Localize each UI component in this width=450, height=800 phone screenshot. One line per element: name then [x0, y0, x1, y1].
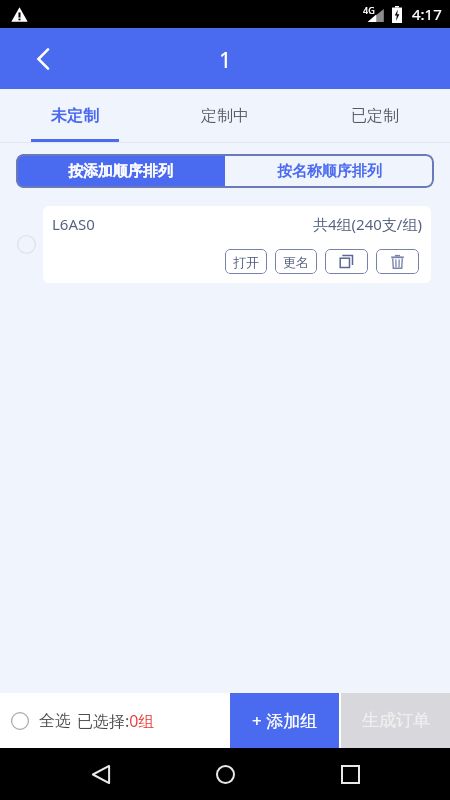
- button[interactable]: Home: [201, 750, 249, 798]
- staticText: 按名称顺序排列: [277, 162, 382, 181]
- staticText: 已选择:0组: [77, 710, 155, 732]
- staticText: 按添加顺序排列: [68, 162, 173, 181]
- staticText: 生成订单: [362, 710, 430, 731]
- button[interactable]: 未定制: [0, 89, 150, 142]
- button[interactable]: Back: [20, 28, 66, 89]
- button[interactable]: 按添加顺序排列: [16, 154, 225, 188]
- staticText: 已定制: [351, 106, 399, 126]
- staticText: 定制中: [201, 106, 249, 126]
- staticText: 4:17: [412, 4, 442, 24]
- button[interactable]: Back: [77, 750, 125, 798]
- staticText: + 添加组: [252, 709, 318, 732]
- button[interactable]: Copy: [325, 249, 368, 274]
- button[interactable]: + 添加组: [230, 693, 339, 748]
- button[interactable]: 更名: [275, 249, 317, 274]
- button[interactable]: Recents: [326, 750, 374, 798]
- staticText: 未定制: [51, 106, 99, 126]
- button[interactable]: 已定制: [300, 89, 450, 142]
- staticText: 全选: [39, 711, 71, 731]
- button[interactable]: Delete: [376, 249, 419, 274]
- button[interactable]: 全选: [0, 693, 230, 748]
- button[interactable]: 按名称顺序排列: [225, 154, 434, 188]
- staticText: 更名: [283, 254, 309, 270]
- button[interactable]: 打开: [225, 249, 267, 274]
- staticText: L6AS0: [52, 214, 95, 234]
- staticText: 共4组(240支/组): [313, 214, 422, 234]
- staticText: 打开: [233, 254, 259, 270]
- button[interactable]: 生成订单: [341, 693, 450, 748]
- staticText: 4G: [363, 4, 375, 16]
- button[interactable]: 定制中: [150, 89, 300, 142]
- staticText: 1: [219, 44, 232, 74]
